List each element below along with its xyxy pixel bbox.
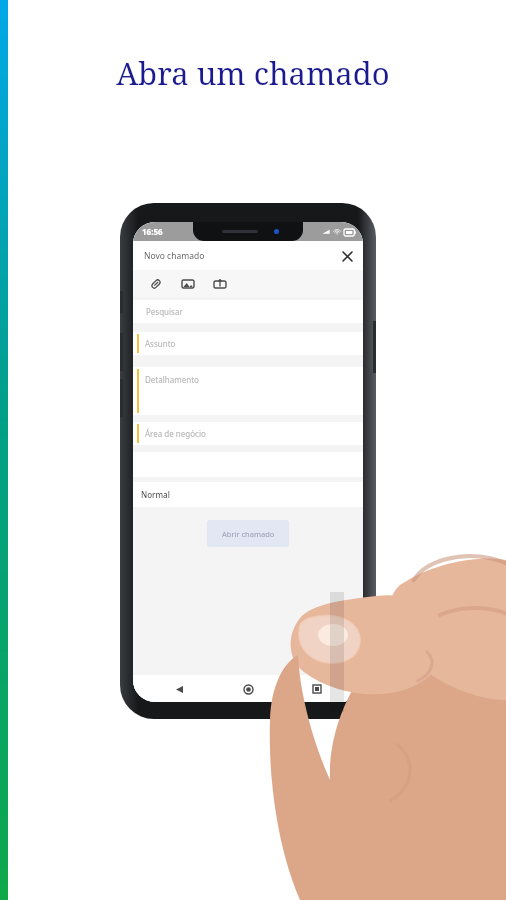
button[interactable]: Voltar <box>171 681 187 697</box>
staticText: Normal <box>141 489 170 500</box>
button[interactable]: Anexar <box>147 275 165 293</box>
staticText: 16:56 <box>142 226 163 237</box>
button[interactable]: Abrir chamado <box>207 520 289 547</box>
button[interactable]: Início <box>240 681 256 697</box>
staticText: Detalhamento <box>145 374 199 385</box>
staticText: Abra um chamado <box>116 52 390 94</box>
button[interactable]: Detalhamento <box>133 367 363 415</box>
button[interactable]: Assunto <box>133 332 363 355</box>
staticText: Abrir chamado <box>222 529 275 539</box>
button[interactable]: Fechar <box>339 248 355 264</box>
staticText: Novo chamado <box>144 250 205 262</box>
staticText: Assunto <box>145 338 176 349</box>
button[interactable]: Imagem <box>179 275 197 293</box>
button[interactable]: Camera <box>211 275 229 293</box>
staticText: Pesquisar <box>146 306 183 317</box>
staticText: Área de negócio <box>145 428 206 439</box>
button[interactable]: Pesquisar <box>133 300 363 323</box>
button[interactable]: Recentes <box>309 681 325 697</box>
button[interactable]: Área de negócio <box>133 422 363 445</box>
button[interactable]: Normal <box>133 482 363 507</box>
